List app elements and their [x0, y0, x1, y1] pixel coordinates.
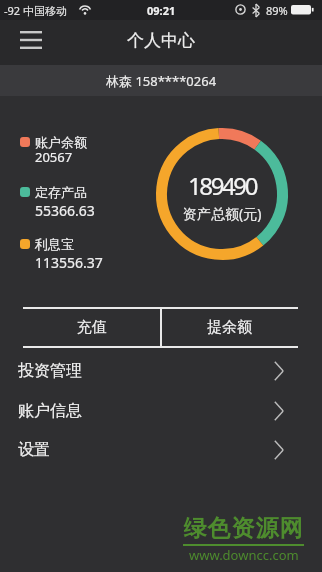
button[interactable]: 充值 — [23, 308, 160, 346]
staticText: 投资管理 — [18, 361, 82, 381]
staticText: 定存产品 — [35, 184, 87, 200]
staticText: 账户信息 — [18, 401, 82, 421]
staticText: 09:21 — [147, 3, 176, 18]
staticText: 提余额 — [207, 318, 252, 337]
button[interactable]: 提余额 — [161, 308, 298, 346]
staticText: 绿色资源网 — [183, 514, 303, 542]
staticText: 189490 — [188, 169, 256, 202]
staticText: 利息宝 — [35, 236, 74, 252]
staticText: 55366.63 — [35, 201, 95, 219]
staticText: 89% — [266, 3, 288, 18]
staticText: 充值 — [77, 318, 107, 337]
button[interactable]: 投资管理 — [0, 351, 322, 391]
staticText: -92 中国移动 — [4, 3, 67, 18]
staticText: 账户余额 — [35, 134, 87, 150]
button[interactable] — [10, 24, 52, 56]
staticText: 20567 — [35, 148, 73, 166]
button[interactable]: 账户信息 — [0, 391, 322, 431]
button[interactable] — [0, 65, 322, 96]
staticText: 个人中心 — [127, 30, 195, 51]
staticText: 林森 158****0264 — [106, 72, 217, 90]
staticText: 设置 — [18, 440, 50, 460]
staticText: www.downcc.com — [189, 546, 299, 562]
button[interactable]: 设置 — [0, 430, 322, 470]
staticText: 资产总额(元) — [183, 204, 262, 223]
staticText: 113556.37 — [35, 253, 103, 271]
